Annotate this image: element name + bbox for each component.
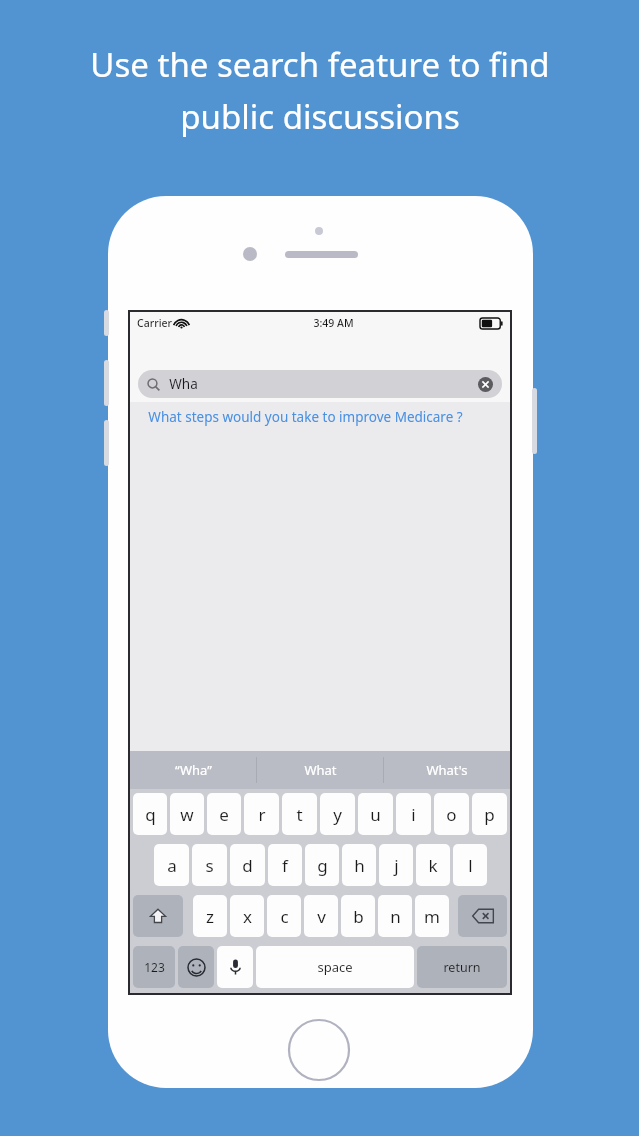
button[interactable]: a (154, 844, 189, 886)
staticText: y (333, 803, 342, 826)
button[interactable]: k (416, 844, 450, 886)
button[interactable]: j (379, 844, 413, 886)
button[interactable]: h (342, 844, 376, 886)
button[interactable]: y (320, 793, 355, 835)
staticText: s (205, 854, 214, 877)
staticText: d (242, 854, 253, 877)
staticText: x (243, 905, 252, 928)
staticText: h (354, 854, 365, 877)
staticText: n (390, 905, 401, 928)
button[interactable]: e (207, 793, 241, 835)
button[interactable]: w (170, 793, 204, 835)
staticText: o (446, 803, 457, 826)
button[interactable]: “Wha” (130, 751, 256, 789)
button[interactable]: 123 (133, 946, 175, 988)
button[interactable]: x (230, 895, 264, 937)
staticText: g (317, 854, 328, 877)
staticText: public discussions (180, 94, 460, 139)
button[interactable]: What's (384, 751, 510, 789)
staticText: 123 (144, 959, 165, 975)
button[interactable]: Wha (138, 370, 502, 398)
button[interactable]: space (256, 946, 414, 988)
button[interactable]: z (193, 895, 227, 937)
staticText: z (206, 905, 214, 928)
staticText: b (353, 905, 364, 928)
button[interactable]: r (244, 793, 279, 835)
staticText: u (370, 803, 381, 826)
button[interactable]: c (267, 895, 301, 937)
button[interactable]: q (133, 793, 167, 835)
button[interactable]: Backspace (458, 895, 507, 937)
button[interactable]: p (472, 793, 507, 835)
staticText: return (443, 959, 481, 976)
button[interactable]: Emoji (178, 946, 214, 988)
staticText: “Wha” (175, 761, 212, 779)
staticText: t (296, 803, 303, 826)
staticText: space (317, 958, 353, 976)
button[interactable]: l (453, 844, 487, 886)
staticText: r (258, 803, 266, 826)
staticText: Wha (169, 375, 198, 393)
button[interactable]: b (341, 895, 375, 937)
staticText: v (317, 905, 326, 928)
staticText: a (167, 854, 177, 877)
staticText: What (304, 761, 337, 779)
button[interactable]: f (268, 844, 302, 886)
staticText: p (484, 803, 495, 826)
staticText: Use the search feature to find (90, 42, 550, 87)
staticText: l (468, 854, 473, 877)
button[interactable]: m (415, 895, 449, 937)
button[interactable]: t (282, 793, 317, 835)
button[interactable]: What (257, 751, 383, 789)
button[interactable]: Shift (133, 895, 183, 937)
staticText: 3:49 AM (313, 316, 354, 330)
staticText: m (424, 905, 440, 928)
staticText: w (180, 803, 194, 826)
button[interactable]: Clear search (478, 377, 493, 392)
staticText: c (280, 905, 289, 928)
button[interactable]: o (434, 793, 469, 835)
staticText: i (411, 803, 416, 826)
button[interactable]: Dictation (217, 946, 253, 988)
staticText: What's (426, 761, 468, 779)
button[interactable]: d (230, 844, 265, 886)
staticText: Carrier (137, 316, 172, 330)
button[interactable]: What steps would you take to improve Med… (130, 402, 463, 426)
button[interactable]: v (304, 895, 338, 937)
button[interactable]: s (192, 844, 227, 886)
staticText: k (428, 854, 438, 877)
staticText: j (394, 854, 399, 877)
button[interactable]: n (378, 895, 412, 937)
button[interactable]: g (305, 844, 339, 886)
staticText: e (219, 803, 229, 826)
staticText: f (282, 854, 288, 877)
button[interactable]: u (358, 793, 393, 835)
staticText: q (145, 803, 156, 826)
button[interactable]: i (396, 793, 431, 835)
button[interactable]: return (417, 946, 507, 988)
